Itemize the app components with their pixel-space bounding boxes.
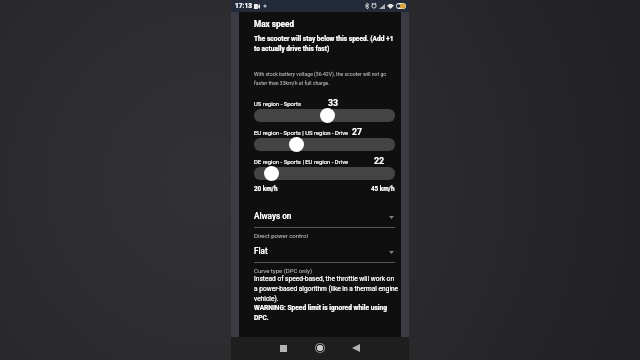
staticText: Curve type (DPC only) bbox=[254, 267, 312, 274]
button[interactable]: EU region - Sports | US region - Drive bbox=[254, 138, 395, 151]
staticText: Instead of speed-based, the throttle wil… bbox=[254, 275, 406, 302]
staticText: Flat bbox=[254, 246, 268, 256]
staticText: Always on bbox=[254, 211, 292, 221]
staticText: Direct power control bbox=[254, 232, 308, 239]
staticText: Max speed bbox=[254, 19, 295, 29]
staticText: 27 bbox=[352, 127, 363, 137]
button[interactable]: US region - Sports bbox=[254, 109, 395, 122]
staticText: 17:13 bbox=[235, 2, 252, 10]
staticText: WARNING: Speed limit is ignored while us… bbox=[254, 304, 406, 321]
button[interactable]: DE region - Sports | EU region - Drive bbox=[254, 167, 395, 180]
button[interactable]: Recent apps bbox=[272, 337, 294, 359]
button[interactable]: Always on bbox=[254, 210, 395, 229]
staticText: The scooter will stay below this speed. … bbox=[254, 35, 406, 52]
staticText: 45 km/h bbox=[371, 185, 395, 192]
staticText: EU region - Sports | US region - Drive bbox=[254, 130, 349, 137]
button[interactable]: Back bbox=[345, 337, 367, 359]
staticText: With stock battery voltage (36-42V), the… bbox=[254, 71, 406, 86]
staticText: 22 bbox=[374, 156, 385, 166]
staticText: US region - Sports bbox=[254, 101, 302, 108]
button[interactable]: Home bbox=[309, 337, 331, 359]
staticText: 20 km/h bbox=[254, 185, 278, 192]
staticText: 33 bbox=[328, 98, 339, 108]
staticText: DE region - Sports | EU region - Drive bbox=[254, 159, 349, 166]
button[interactable]: Flat bbox=[254, 245, 395, 264]
